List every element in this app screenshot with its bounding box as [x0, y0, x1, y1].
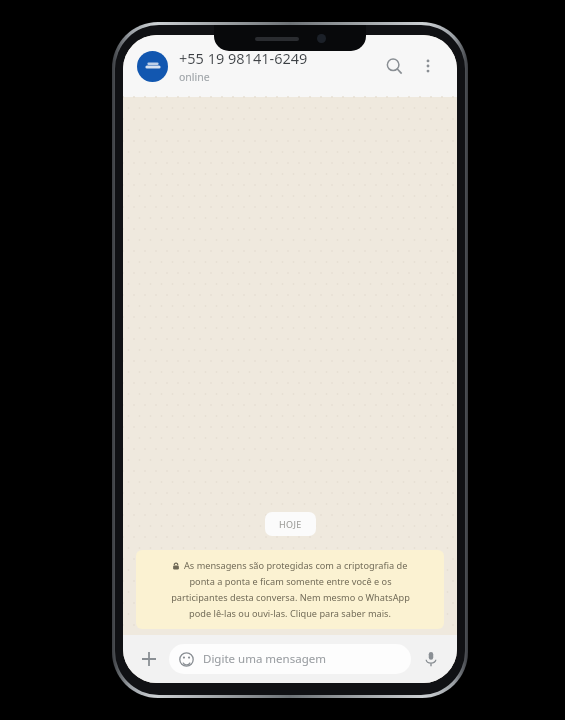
button[interactable]: +55 19 98141-6249 — [179, 48, 377, 84]
staticText: pode lê-las ou ouvi-las. Clique para sab… — [189, 607, 391, 620]
staticText: +55 19 98141-6249 — [179, 48, 308, 68]
button[interactable]: Digite uma mensagem — [169, 644, 411, 674]
staticText: online — [179, 70, 210, 84]
button[interactable]: Search — [377, 49, 411, 83]
staticText: participantes desta conversa. Nem mesmo … — [171, 591, 410, 604]
staticText: HOJE — [279, 518, 302, 530]
button[interactable]: Attach — [133, 643, 165, 675]
staticText: Digite uma mensagem — [203, 651, 326, 667]
staticText: As mensagens são protegidas com a cripto… — [184, 559, 408, 572]
button[interactable]: Voice message — [415, 643, 447, 675]
button[interactable]: HOJE — [265, 512, 316, 536]
button[interactable]: More options — [411, 49, 445, 83]
button[interactable]: As mensagens são protegidas com a cripto… — [136, 550, 444, 629]
staticText: ponta a ponta e ficam somente entre você… — [189, 575, 392, 588]
button[interactable]: Contact photo — [137, 51, 168, 82]
